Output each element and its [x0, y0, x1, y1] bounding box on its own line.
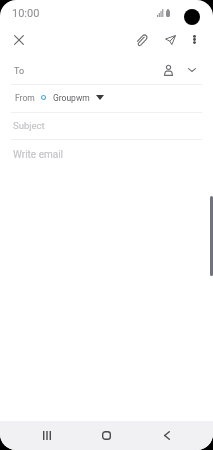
button[interactable]: Attach file: [130, 29, 152, 51]
staticText: To: [14, 66, 25, 77]
button[interactable]: Recent apps: [31, 421, 62, 450]
button[interactable]: Back: [151, 421, 182, 450]
button[interactable]: Write email: [0, 140, 213, 170]
staticText: Write email: [13, 149, 64, 161]
staticText: 10:00: [12, 7, 40, 20]
button[interactable]: Subject: [0, 113, 213, 139]
button[interactable]: Send: [159, 29, 181, 51]
button[interactable]: Close: [8, 29, 30, 51]
staticText: Groupwm: [53, 93, 90, 103]
button[interactable]: From: [0, 85, 213, 112]
button[interactable]: To: [0, 57, 213, 84]
button[interactable]: More options: [183, 28, 205, 50]
button[interactable]: Home: [91, 421, 122, 450]
button[interactable]: Add from contacts: [157, 59, 179, 81]
button[interactable]: Show Cc and Bcc: [181, 59, 203, 81]
staticText: From: [15, 93, 35, 103]
staticText: Subject: [13, 120, 45, 131]
